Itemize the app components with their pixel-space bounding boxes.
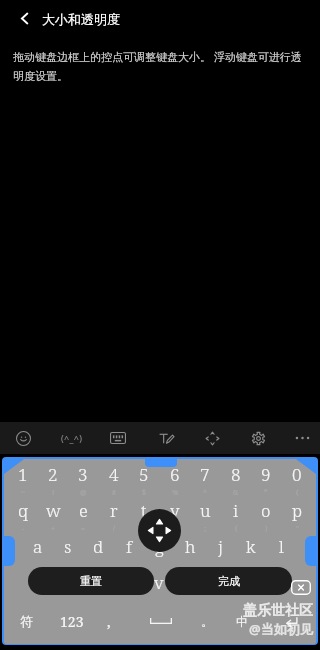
button[interactable]: i bbox=[221, 495, 251, 525]
button[interactable]: x bbox=[83, 567, 113, 597]
button[interactable]: m bbox=[236, 567, 266, 597]
button[interactable]: Backspace bbox=[291, 580, 311, 595]
staticText: (^_^) bbox=[61, 432, 83, 444]
staticText: o bbox=[261, 499, 271, 522]
button[interactable]: , bbox=[96, 607, 122, 635]
staticText: 123 bbox=[60, 612, 84, 631]
button[interactable]: Emoji bbox=[10, 425, 36, 451]
button[interactable]: Kaomoji bbox=[59, 425, 85, 451]
button[interactable]: Handwriting bbox=[153, 425, 179, 451]
button[interactable]: t bbox=[129, 495, 159, 525]
button[interactable]: Resize left bbox=[2, 536, 15, 566]
button[interactable]: h bbox=[175, 531, 205, 561]
button[interactable]: g bbox=[144, 531, 174, 561]
staticText: @当如初见 bbox=[249, 620, 313, 638]
button[interactable]: f bbox=[114, 531, 144, 561]
button[interactable]: k bbox=[236, 531, 266, 561]
staticText: 4 bbox=[109, 463, 119, 486]
button[interactable]: Resize keyboard bbox=[199, 425, 225, 451]
staticText: % bbox=[172, 488, 179, 498]
button[interactable]: n bbox=[205, 567, 235, 597]
staticText: l bbox=[279, 535, 284, 558]
staticText: n bbox=[215, 571, 226, 594]
button[interactable]: Settings bbox=[245, 425, 271, 451]
button[interactable]: Move keyboard bbox=[138, 509, 181, 552]
button[interactable]: 中 bbox=[229, 607, 255, 635]
staticText: $ bbox=[142, 488, 146, 498]
button[interactable]: j bbox=[205, 531, 235, 561]
staticText: q bbox=[18, 499, 29, 522]
button[interactable]: Space bbox=[127, 607, 195, 635]
button[interactable]: Resize right bbox=[305, 536, 318, 566]
button[interactable]: 7 bbox=[190, 459, 220, 489]
staticText: 。 bbox=[201, 613, 214, 629]
button[interactable]: 4 bbox=[99, 459, 129, 489]
button[interactable]: l bbox=[266, 531, 296, 561]
button[interactable]: 完成 bbox=[165, 567, 292, 595]
button[interactable]: 9 bbox=[251, 459, 281, 489]
staticText: h bbox=[185, 535, 196, 558]
button[interactable]: Enter bbox=[276, 607, 306, 635]
staticText: 完成 bbox=[218, 574, 240, 588]
button[interactable]: 3 bbox=[68, 459, 98, 489]
button[interactable]: v bbox=[144, 567, 174, 597]
button[interactable]: w bbox=[38, 495, 68, 525]
button[interactable]: 符 bbox=[14, 607, 39, 635]
button[interactable]: o bbox=[251, 495, 281, 525]
button[interactable]: y bbox=[160, 495, 190, 525]
button[interactable]: e bbox=[68, 495, 98, 525]
staticText: j bbox=[218, 535, 223, 558]
button[interactable]: Keyboard layout bbox=[105, 425, 131, 451]
button[interactable]: z bbox=[53, 567, 83, 597]
staticText: 大小和透明度 bbox=[42, 11, 120, 27]
staticText: 重置 bbox=[80, 574, 102, 588]
staticText: 1 bbox=[18, 463, 28, 486]
staticText: ! bbox=[52, 488, 55, 498]
button[interactable]: 1 bbox=[8, 459, 38, 489]
staticText: 符 bbox=[20, 613, 33, 629]
button[interactable]: 。 bbox=[194, 607, 220, 635]
staticText: 0 bbox=[292, 463, 302, 486]
staticText: 9 bbox=[261, 463, 271, 486]
button[interactable]: 8 bbox=[221, 459, 251, 489]
staticText: ( bbox=[235, 524, 238, 534]
button[interactable]: Resize top bbox=[145, 457, 177, 467]
staticText: 盖乐世社区 bbox=[243, 602, 313, 620]
button[interactable]: 重置 bbox=[28, 567, 154, 595]
staticText: 8 bbox=[231, 463, 241, 486]
button[interactable]: 0 bbox=[282, 459, 312, 489]
button[interactable]: s bbox=[53, 531, 83, 561]
button[interactable]: 6 bbox=[160, 459, 190, 489]
staticText: u bbox=[200, 499, 211, 522]
staticText: 3 bbox=[78, 463, 88, 486]
button[interactable]: r bbox=[99, 495, 129, 525]
button[interactable]: d bbox=[83, 531, 113, 561]
button[interactable]: 123 bbox=[57, 607, 87, 635]
button[interactable]: c bbox=[114, 567, 144, 597]
button[interactable]: More options bbox=[289, 425, 315, 451]
button[interactable]: Back bbox=[13, 7, 35, 29]
button[interactable]: b bbox=[175, 567, 205, 597]
button[interactable]: p bbox=[282, 495, 312, 525]
staticText: x bbox=[93, 571, 103, 594]
staticText: * bbox=[264, 488, 268, 498]
staticText: @ bbox=[80, 488, 87, 498]
staticText: & bbox=[233, 488, 239, 498]
button[interactable]: u bbox=[190, 495, 220, 525]
staticText: d bbox=[93, 535, 104, 558]
button[interactable]: 2 bbox=[38, 459, 68, 489]
button[interactable]: q bbox=[8, 495, 38, 525]
staticText: y bbox=[170, 499, 180, 522]
staticText: 拖动键盘边框上的控点可调整键盘大小。 浮动键盘可进行透明度设置。 bbox=[13, 49, 305, 83]
staticText: 6 bbox=[170, 463, 180, 486]
button[interactable]: 5 bbox=[129, 459, 159, 489]
staticText: f bbox=[126, 535, 132, 558]
button[interactable]: a bbox=[23, 531, 53, 561]
